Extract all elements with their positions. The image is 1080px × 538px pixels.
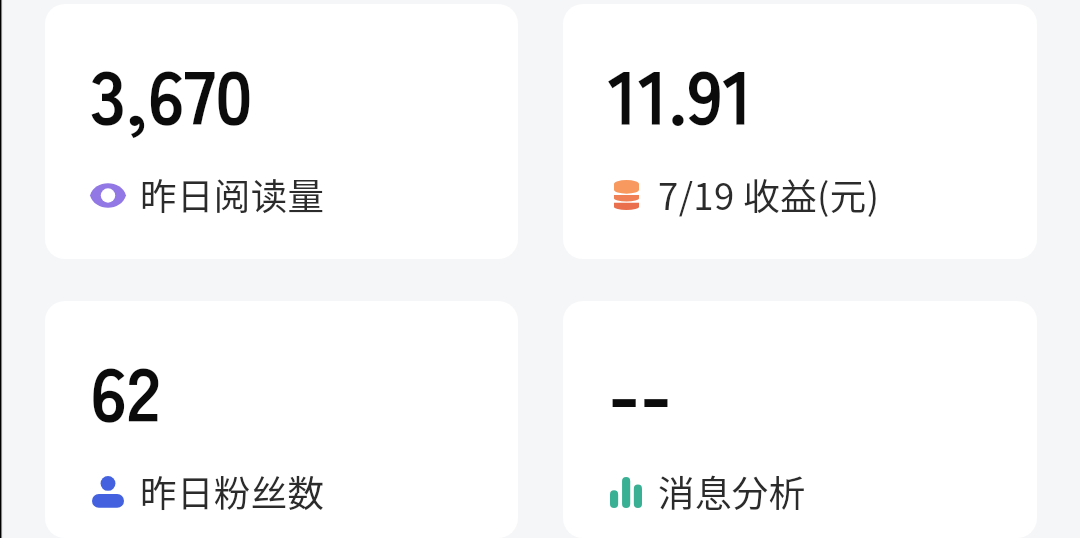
other: Earnings [606,175,646,215]
staticText: 昨日阅读量 [140,168,325,221]
button[interactable]: 62 [45,301,518,538]
staticText: 7/19 收益(元) [658,168,880,221]
other: Yesterday fans [88,472,128,512]
button[interactable]: 11.91 [563,4,1037,259]
other: Yesterday reads [88,175,128,215]
staticText: -- [608,335,672,444]
staticText: 昨日粉丝数 [140,465,325,518]
staticText: 消息分析 [658,465,806,518]
button[interactable]: -- [563,301,1037,538]
button[interactable]: 3,670 [45,4,518,259]
staticText: 62 [90,335,160,444]
staticText: 3,670 [90,38,253,147]
other: Message analysis [606,472,646,512]
staticText: 11.91 [608,38,753,147]
